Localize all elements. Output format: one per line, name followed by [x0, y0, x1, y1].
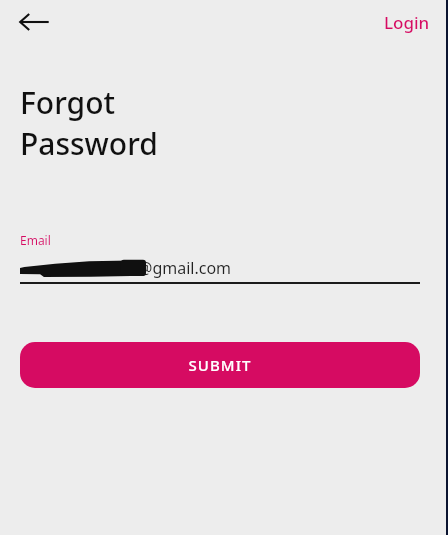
button[interactable]: Back: [12, 0, 56, 44]
button[interactable]: Login: [374, 5, 440, 40]
staticText: Forgot: [20, 82, 115, 123]
staticText: Login: [384, 11, 430, 34]
button[interactable]: @gmail.com: [20, 254, 420, 282]
staticText: Email: [20, 232, 51, 248]
staticText: Password: [20, 123, 158, 164]
staticText: @gmail.com: [138, 257, 232, 279]
button[interactable]: SUBMIT: [20, 342, 420, 388]
staticText: SUBMIT: [188, 355, 252, 375]
